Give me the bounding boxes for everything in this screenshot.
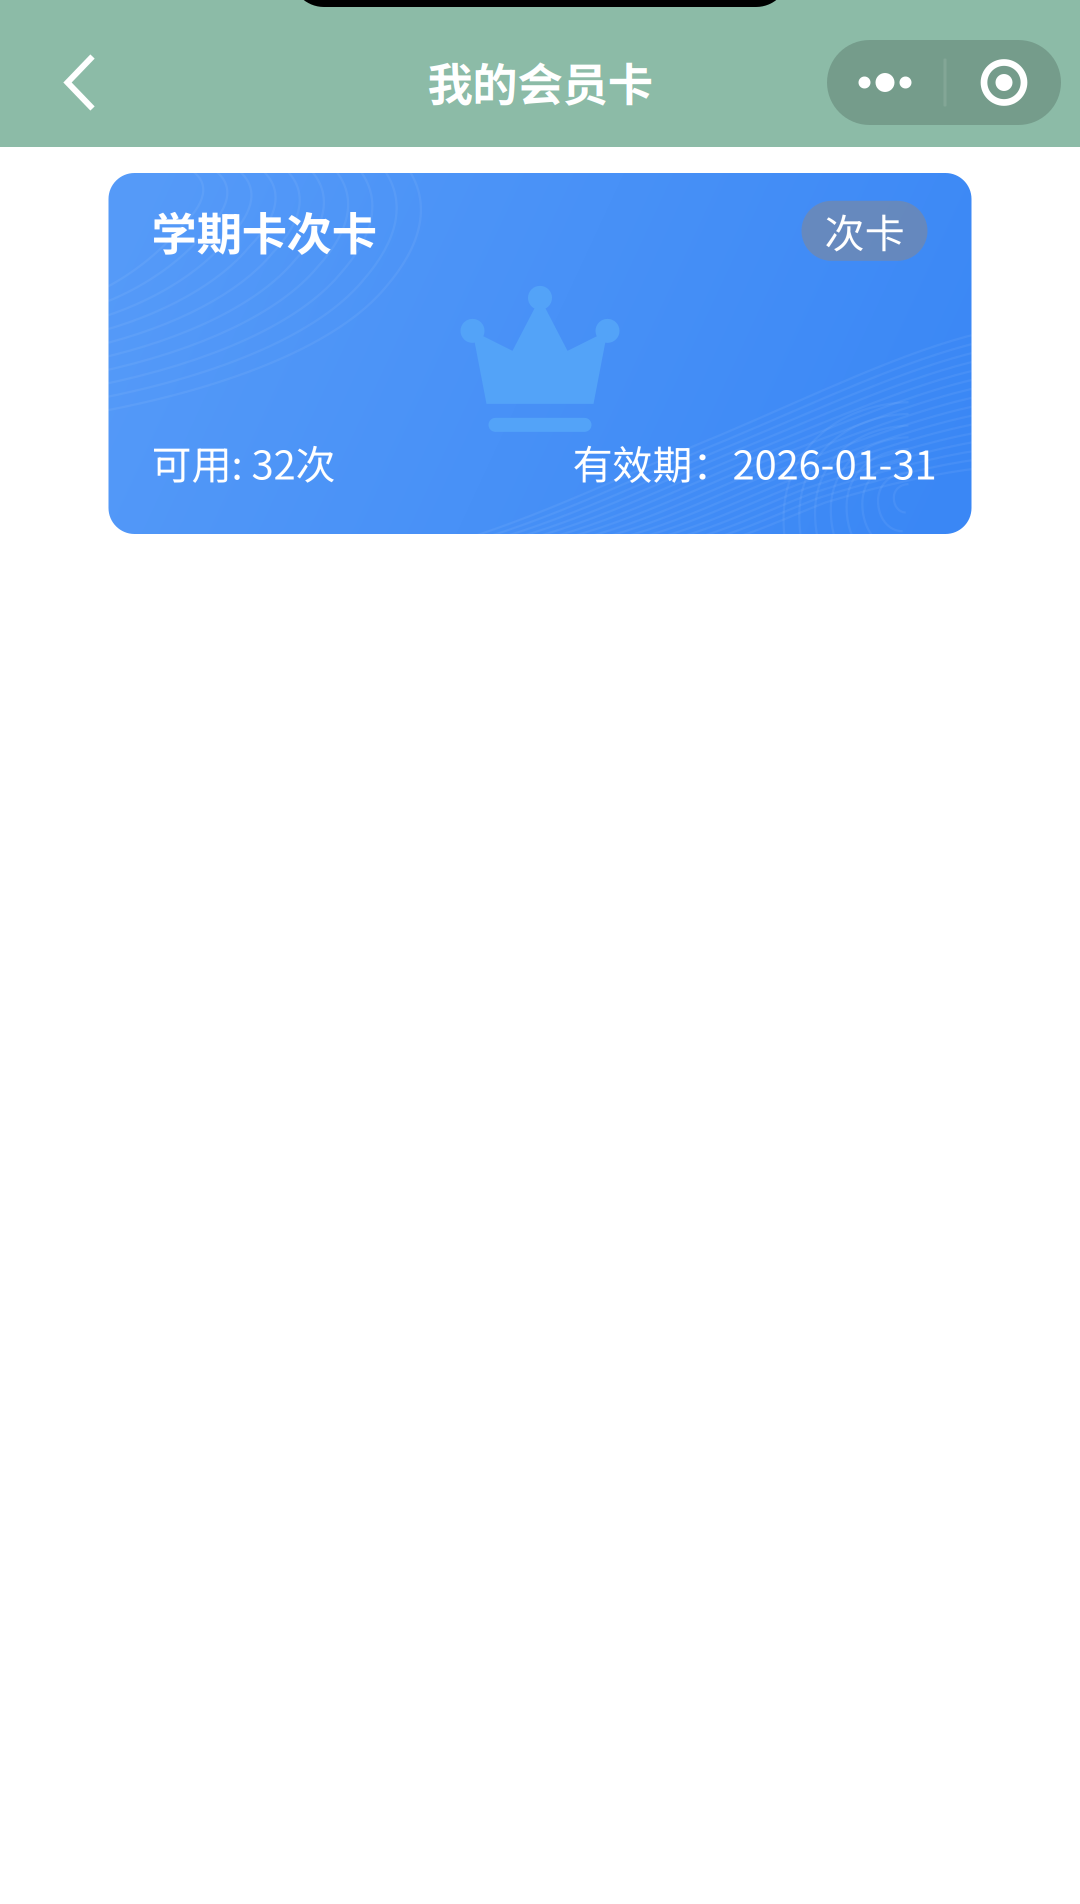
staticText: 我的会员卡 [427,49,652,114]
button[interactable]: More [826,40,943,125]
staticText: 学期卡次卡 [151,198,376,264]
staticText: 有效期：2026-01-31 [572,433,936,491]
button[interactable]: Back [0,30,160,134]
button[interactable]: Close mini program [946,40,1061,125]
button[interactable]: 学期卡次卡 [108,173,971,534]
staticText: 次卡 [824,202,904,260]
staticText: 可用: 32次 [151,433,335,491]
